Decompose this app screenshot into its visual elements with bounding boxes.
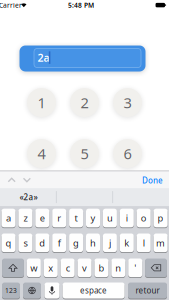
staticText: p [158, 212, 164, 224]
button[interactable]: 2a [34, 48, 141, 67]
button[interactable]: n [111, 258, 125, 278]
staticText: w [30, 262, 37, 274]
button[interactable]: k [120, 233, 134, 253]
staticText: y [90, 212, 95, 224]
button[interactable]: l [137, 233, 151, 253]
staticText: j [109, 237, 111, 249]
staticText: 5 [80, 144, 88, 163]
button[interactable]: z [18, 208, 32, 228]
staticText: m [156, 237, 165, 249]
staticText: e [40, 212, 45, 224]
staticText: d [39, 237, 45, 249]
button[interactable]: 2 [70, 88, 99, 117]
button[interactable]: v [77, 258, 91, 278]
staticText: 2 [80, 93, 88, 112]
staticText: 2a [37, 50, 49, 65]
button[interactable]: t [69, 208, 83, 228]
button[interactable]: i [120, 208, 134, 228]
button[interactable]: 1 [27, 88, 56, 117]
staticText: v [82, 262, 87, 274]
button[interactable]: q [1, 233, 15, 253]
button[interactable]: x [44, 258, 58, 278]
staticText: 6 [123, 144, 131, 163]
button[interactable]: Delete [145, 258, 167, 278]
button[interactable]: r [52, 208, 66, 228]
staticText: o [141, 212, 147, 224]
button[interactable]: e [35, 208, 49, 228]
button[interactable]: ' [128, 258, 142, 278]
button[interactable]: a [1, 208, 15, 228]
button[interactable]: 3 [113, 88, 142, 117]
button[interactable]: Next field [23, 177, 31, 183]
staticText: c [66, 262, 70, 274]
button[interactable]: espace [63, 282, 125, 299]
staticText: Carrier [0, 1, 22, 10]
staticText: 123 [5, 286, 17, 295]
staticText: k [124, 237, 129, 249]
staticText: q [5, 237, 11, 249]
button[interactable]: «2a» [19, 192, 37, 202]
staticText: ' [134, 262, 136, 274]
button[interactable]: u [103, 208, 117, 228]
button[interactable]: Previous field [8, 177, 16, 183]
button[interactable]: c [61, 258, 75, 278]
button[interactable]: j [103, 233, 117, 253]
staticText: n [115, 262, 121, 274]
button[interactable]: 6 [113, 139, 142, 168]
staticText: i [126, 212, 128, 224]
button[interactable]: f [52, 233, 66, 253]
staticText: espace [80, 285, 107, 296]
button[interactable]: y [86, 208, 100, 228]
button[interactable]: 4 [27, 139, 56, 168]
staticText: «2a» [19, 192, 37, 202]
button[interactable]: 5 [70, 139, 99, 168]
staticText: a [6, 212, 11, 224]
staticText: r [57, 212, 61, 224]
staticText: u [107, 212, 113, 224]
button[interactable]: Next keyboard [23, 282, 41, 299]
staticText: z [23, 212, 27, 224]
staticText: l [143, 237, 145, 249]
staticText: retour [135, 285, 159, 296]
button[interactable]: s [18, 233, 32, 253]
staticText: b [98, 262, 104, 274]
button[interactable]: retour [128, 282, 167, 299]
button[interactable]: Shift [2, 258, 24, 278]
button[interactable]: g [69, 233, 83, 253]
staticText: x [48, 262, 53, 274]
staticText: 3 [123, 93, 131, 112]
staticText: 4 [37, 144, 45, 163]
button[interactable]: p [154, 208, 168, 228]
staticText: h [90, 237, 96, 249]
button[interactable]: Done [142, 175, 163, 186]
staticText: Done [142, 175, 163, 186]
button[interactable]: Dictation [44, 282, 59, 299]
staticText: f [58, 237, 61, 249]
button[interactable]: 123 [2, 282, 20, 299]
button[interactable]: d [35, 233, 49, 253]
staticText: 1 [37, 93, 45, 112]
button[interactable]: o [137, 208, 151, 228]
button[interactable]: b [94, 258, 108, 278]
button[interactable]: h [86, 233, 100, 253]
button[interactable]: m [154, 233, 168, 253]
button[interactable]: w [27, 258, 41, 278]
staticText: t [75, 212, 78, 224]
staticText: 5:48 PM [68, 1, 94, 10]
staticText: s [23, 237, 27, 249]
staticText: g [73, 237, 79, 249]
